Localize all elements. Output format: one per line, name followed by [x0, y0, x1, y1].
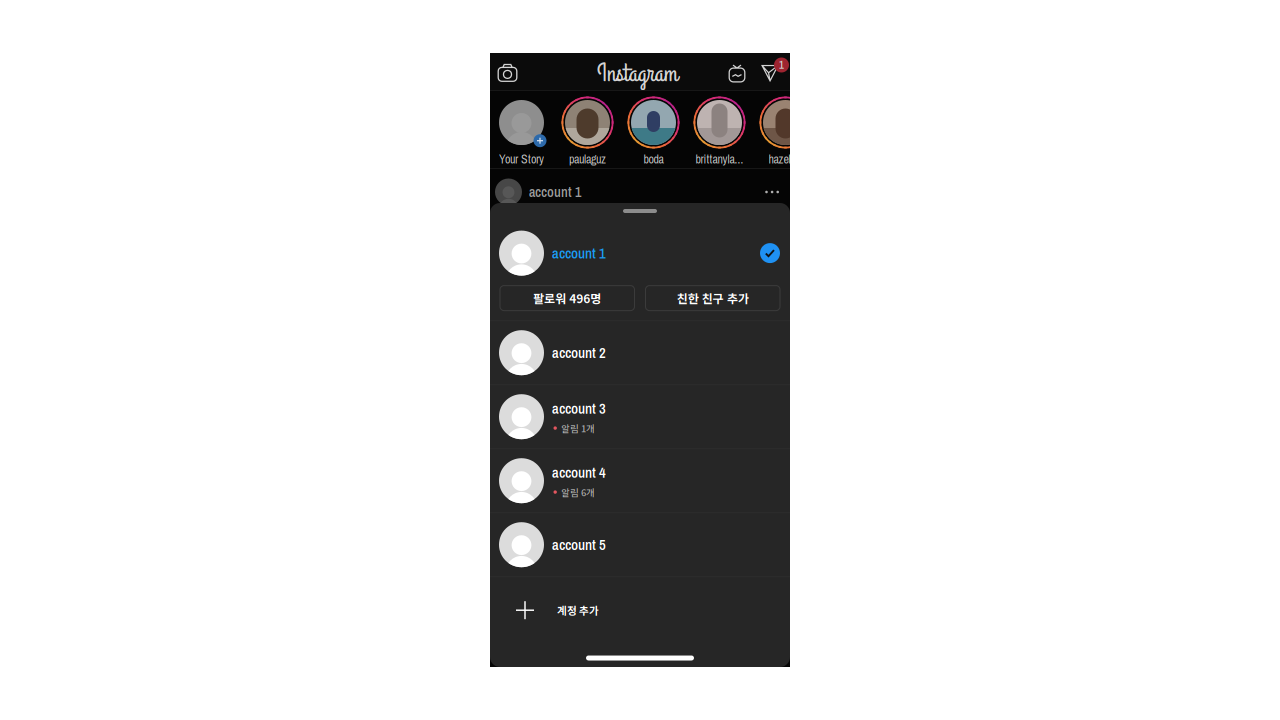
staticText: 알림 1개 [561, 421, 595, 435]
button[interactable]: account 4 [490, 449, 790, 512]
button[interactable]: 친한 친구 추가 [645, 286, 780, 311]
button[interactable]: boda [620, 90, 686, 169]
button[interactable]: 계정 추가 [490, 577, 790, 643]
button[interactable]: 팔로워 496명 [500, 286, 634, 311]
staticText: 팔로워 496명 [533, 289, 601, 307]
staticText: brittanyla... [695, 151, 743, 167]
staticText: boda [643, 151, 663, 167]
button[interactable]: Camera [495, 53, 520, 90]
staticText: account 2 [552, 343, 606, 363]
staticText: 1 [779, 58, 784, 72]
button[interactable]: paulaguz [554, 90, 620, 169]
button[interactable]: IGTV [726, 53, 757, 90]
staticText: 알림 6개 [561, 485, 595, 499]
button[interactable]: account 1 [490, 222, 790, 285]
staticText: account 5 [552, 535, 606, 555]
staticText: Your Story [499, 151, 544, 167]
staticText: Instagram [597, 56, 678, 91]
button[interactable]: Your Story [488, 90, 554, 169]
button[interactable]: Direct messages [757, 53, 783, 90]
staticText: 계정 추가 [557, 602, 599, 618]
staticText: hazeljen [768, 151, 802, 167]
staticText: account 4 [552, 463, 606, 482]
staticText: account 1 [529, 183, 581, 201]
button[interactable]: hazeljen [752, 90, 818, 169]
button[interactable]: account 5 [490, 513, 790, 576]
staticText: 친한 친구 추가 [677, 289, 749, 307]
button[interactable]: account 2 [490, 321, 790, 384]
staticText: paulaguz [569, 151, 606, 167]
staticText: account 3 [552, 399, 606, 418]
button[interactable]: account 3 [490, 385, 790, 448]
staticText: account 1 [552, 243, 606, 263]
button[interactable]: brittanyla... [686, 90, 752, 169]
